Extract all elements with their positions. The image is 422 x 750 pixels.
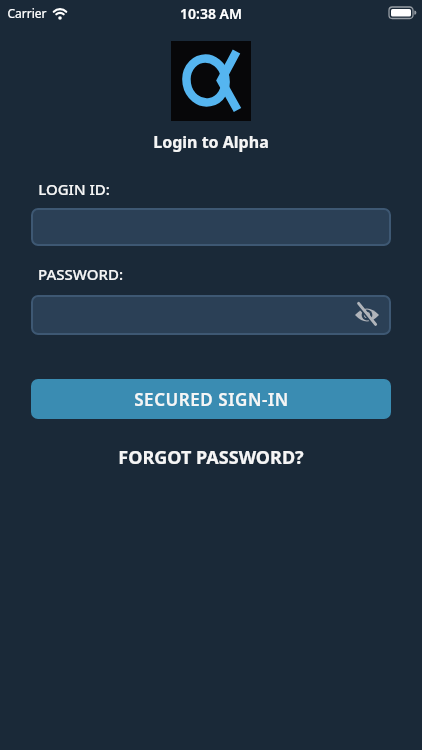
staticText: PASSWORD:	[38, 264, 123, 284]
staticText: 10:38 AM	[180, 4, 242, 23]
button[interactable]: SECURED SIGN-IN	[31, 379, 391, 419]
button[interactable]	[31, 295, 391, 335]
staticText: LOGIN ID:	[38, 179, 110, 199]
staticText: SECURED SIGN-IN	[134, 388, 289, 411]
button[interactable]: FORGOT PASSWORD?	[118, 445, 304, 470]
staticText: FORGOT PASSWORD?	[118, 445, 304, 470]
button[interactable]	[31, 208, 391, 246]
staticText: Login to Alpha	[153, 131, 269, 153]
button[interactable]	[354, 302, 380, 328]
staticText: Carrier	[7, 5, 47, 21]
